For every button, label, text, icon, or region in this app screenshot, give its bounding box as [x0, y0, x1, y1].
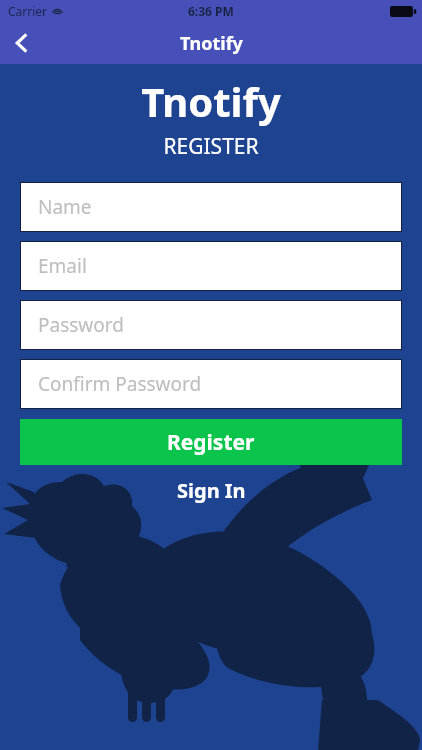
button[interactable]: Sign In [161, 473, 262, 508]
button[interactable]: Back [0, 22, 44, 64]
staticText: Carrier [8, 3, 48, 19]
button[interactable]: Email [20, 241, 402, 291]
button[interactable]: Confirm Password [20, 359, 402, 409]
staticText: Register [167, 428, 255, 457]
button[interactable]: Password [20, 300, 402, 350]
staticText: Tnotify [180, 31, 243, 56]
staticText: REGISTER [0, 132, 422, 161]
staticText: Tnotify [0, 74, 422, 128]
staticText: Confirm Password [38, 371, 202, 397]
button[interactable]: Name [20, 182, 402, 232]
staticText: Name [38, 194, 92, 220]
staticText: 6:36 PM [188, 3, 234, 19]
staticText: Password [38, 312, 124, 338]
staticText: Email [38, 253, 87, 279]
button[interactable]: Register [20, 419, 402, 465]
staticText: Sign In [177, 477, 246, 504]
